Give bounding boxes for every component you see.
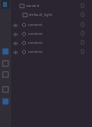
button[interactable]: Options [79,48,86,55]
button[interactable]: Figma menu [1,0,11,10]
button[interactable]: Options [79,21,86,28]
button[interactable]: Options [79,2,86,9]
button[interactable]: variant [11,1,92,10]
button[interactable]: Toggle visibility [11,47,92,56]
button[interactable]: Plugins [1,97,10,106]
button[interactable]: Toggle visibility [11,29,92,38]
button[interactable]: Shape [1,70,10,79]
button[interactable]: Toggle visibility [11,20,92,29]
button[interactable]: default_light [11,10,92,19]
button[interactable]: Options [79,39,86,46]
button[interactable]: Text [1,85,10,94]
button[interactable]: Toggle visibility [12,31,18,37]
button[interactable]: Toggle visibility [12,22,18,28]
button[interactable]: Options [79,11,86,18]
staticText: default_light [29,12,53,17]
staticText: variant [26,3,40,8]
button[interactable]: Options [79,30,86,37]
button[interactable]: Toggle visibility [12,40,18,46]
button[interactable]: Toggle visibility [11,38,92,47]
button[interactable]: Component [1,47,10,56]
button[interactable]: Frame [1,59,10,68]
staticText: content [28,49,43,54]
staticText: content [28,40,43,45]
staticText: content [28,22,43,27]
staticText: content [28,31,43,36]
button[interactable]: Toggle visibility [12,49,18,55]
